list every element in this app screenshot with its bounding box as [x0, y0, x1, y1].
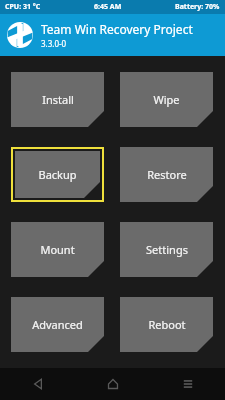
button[interactable]: Wipe [120, 72, 213, 127]
staticText: Wipe [153, 92, 180, 107]
staticText: Team Win Recovery Project [41, 21, 193, 37]
staticText: CPU: 31 °C [5, 2, 41, 12]
staticText: Backup [38, 167, 77, 182]
staticText: Restore [147, 167, 187, 182]
button[interactable]: Menu [150, 368, 225, 400]
button[interactable]: Advanced [11, 297, 104, 352]
button[interactable]: Backup [15, 151, 100, 198]
staticText: Battery: 70% [175, 2, 220, 12]
button[interactable]: Back [0, 368, 75, 400]
button[interactable]: Restore [120, 147, 213, 202]
button[interactable]: Team Win Recovery Project [0, 14, 225, 56]
staticText: 6:45 AM [94, 2, 122, 12]
staticText: Settings [146, 242, 188, 257]
staticText: 3.3.0-0 [41, 38, 67, 49]
button[interactable]: Settings [120, 222, 213, 277]
button[interactable]: Reboot [120, 297, 213, 352]
button[interactable]: Home [75, 368, 150, 400]
button[interactable]: Mount [11, 222, 104, 277]
staticText: Mount [40, 242, 75, 257]
staticText: Advanced [32, 317, 83, 332]
staticText: Install [42, 92, 74, 107]
staticText: Reboot [148, 317, 186, 332]
button[interactable]: Install [11, 72, 104, 127]
